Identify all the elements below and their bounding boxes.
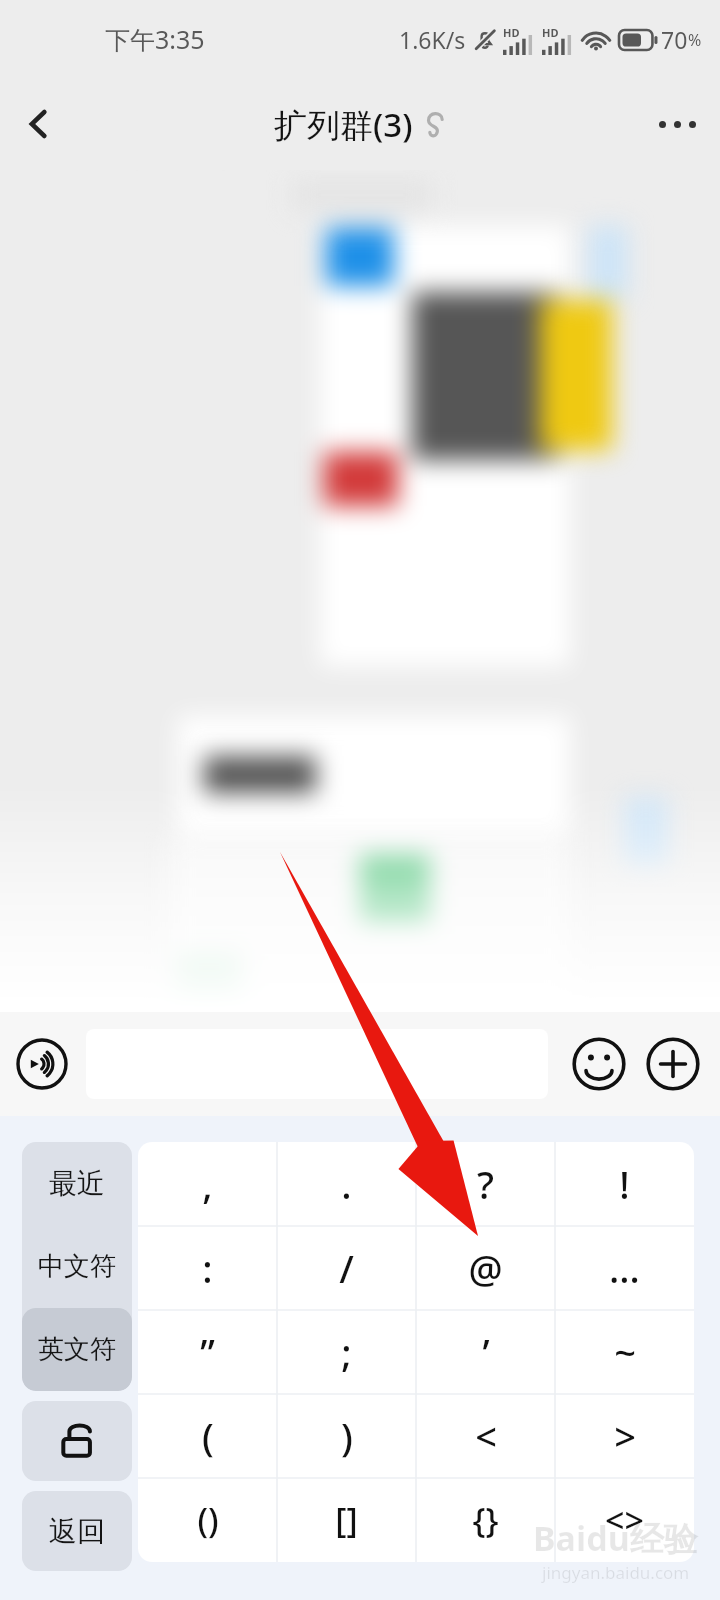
- button[interactable]: ?: [416, 1142, 555, 1226]
- button[interactable]: 最近: [22, 1142, 132, 1225]
- staticText: ?: [477, 1158, 494, 1210]
- button[interactable]: !: [555, 1142, 694, 1226]
- staticText: 下午3:35: [105, 22, 205, 56]
- button[interactable]: Voice input: [7, 1029, 77, 1099]
- button[interactable]: @: [416, 1226, 555, 1310]
- staticText: %: [688, 29, 702, 51]
- button[interactable]: :: [138, 1226, 277, 1310]
- button[interactable]: ,: [138, 1142, 277, 1226]
- staticText: <: [475, 1410, 497, 1462]
- staticText: {}: [472, 1497, 499, 1543]
- button[interactable]: ’: [416, 1310, 555, 1394]
- staticText: ;: [341, 1326, 352, 1378]
- staticText: .: [341, 1158, 352, 1210]
- button[interactable]: ~: [555, 1310, 694, 1394]
- staticText: Baidu经验: [533, 1515, 698, 1561]
- staticText: :: [202, 1242, 213, 1294]
- button[interactable]: ”: [138, 1310, 277, 1394]
- button[interactable]: [86, 1029, 548, 1099]
- staticText: []: [335, 1497, 358, 1543]
- staticText: @: [468, 1242, 503, 1294]
- button[interactable]: 英文符: [22, 1308, 132, 1391]
- button[interactable]: <>: [555, 1478, 694, 1562]
- button[interactable]: []: [277, 1478, 416, 1562]
- staticText: /: [339, 1242, 354, 1294]
- staticText: …: [609, 1242, 640, 1294]
- staticText: ”: [200, 1326, 215, 1378]
- staticText: jingyan.baidu.com: [542, 1561, 690, 1584]
- button[interactable]: Emoji: [564, 1029, 634, 1099]
- staticText: HD: [542, 25, 559, 40]
- staticText: 最近: [49, 1166, 105, 1201]
- staticText: 返回: [49, 1514, 105, 1549]
- button[interactable]: >: [555, 1394, 694, 1478]
- staticText: 70: [661, 24, 688, 55]
- staticText: (: [202, 1410, 214, 1462]
- button[interactable]: 中文符: [22, 1225, 132, 1308]
- staticText: <>: [605, 1497, 644, 1543]
- staticText: 1.6K/s: [399, 24, 466, 55]
- staticText: ’: [482, 1326, 490, 1378]
- button[interactable]: .: [277, 1142, 416, 1226]
- button[interactable]: <: [416, 1394, 555, 1478]
- staticText: 英文符: [38, 1333, 116, 1366]
- button[interactable]: ): [277, 1394, 416, 1478]
- button[interactable]: 返回: [22, 1491, 132, 1571]
- button[interactable]: ;: [277, 1310, 416, 1394]
- staticText: ~: [614, 1326, 636, 1378]
- staticText: ): [341, 1410, 353, 1462]
- button[interactable]: /: [277, 1226, 416, 1310]
- button[interactable]: More options: [634, 81, 720, 167]
- button[interactable]: (): [138, 1478, 277, 1562]
- button[interactable]: More functions: [638, 1029, 708, 1099]
- button[interactable]: …: [555, 1226, 694, 1310]
- button[interactable]: Back: [0, 85, 78, 163]
- staticText: (): [197, 1497, 219, 1543]
- button[interactable]: {}: [416, 1478, 555, 1562]
- staticText: !: [619, 1158, 630, 1210]
- staticText: 扩列群(3): [274, 102, 413, 147]
- button[interactable]: (: [138, 1394, 277, 1478]
- staticText: 中文符: [38, 1250, 116, 1283]
- staticText: HD: [503, 25, 520, 40]
- staticText: ,: [202, 1158, 213, 1210]
- button[interactable]: Lock keyboard: [22, 1401, 132, 1481]
- staticText: >: [614, 1410, 636, 1462]
